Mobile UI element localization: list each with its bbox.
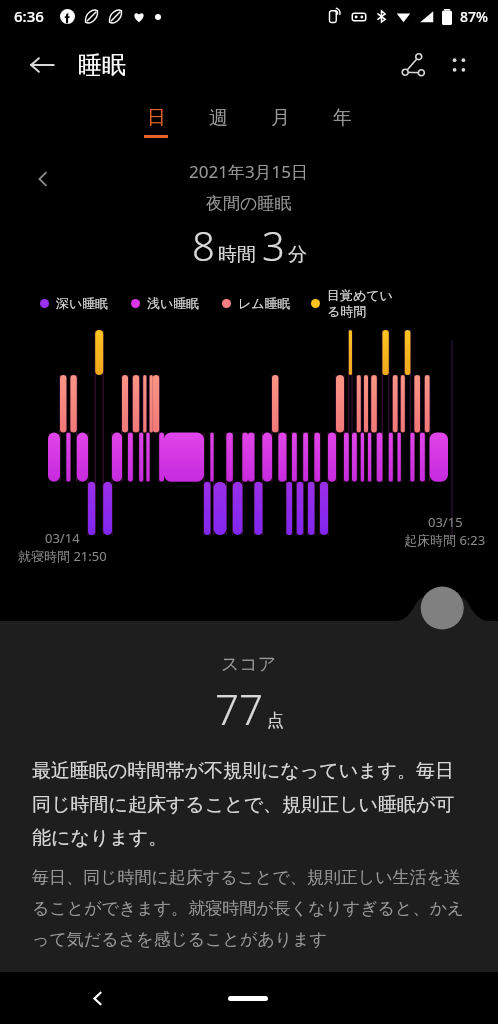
staticText: 時間 <box>218 243 256 267</box>
staticText: 03/14 <box>45 529 80 547</box>
staticText: 毎日、同じ時間に起床することで、規則正しい生活を送ることができます。就寝時間が長… <box>32 867 466 950</box>
button[interactable]: Home <box>228 996 268 1001</box>
button[interactable]: Back <box>22 45 62 85</box>
staticText: 77 <box>215 680 263 737</box>
button[interactable]: Previous day <box>24 160 62 198</box>
staticText: 点 <box>267 710 284 731</box>
staticText: 起床時間 6:23 <box>404 531 486 549</box>
staticText: レム睡眠 <box>238 295 291 311</box>
staticText: 分 <box>288 243 307 267</box>
staticText: 年 <box>333 106 352 130</box>
button[interactable]: Share <box>390 42 436 88</box>
staticText: 睡眠 <box>78 50 126 80</box>
staticText: 87% <box>460 7 488 26</box>
staticText: 夜間の睡眠 <box>206 193 292 214</box>
staticText: スコア <box>221 653 277 676</box>
staticText: 就寝時間 21:50 <box>18 547 107 565</box>
button[interactable]: 日 <box>125 99 187 145</box>
staticText: 8 <box>192 218 215 272</box>
staticText: 目覚めてい <box>327 287 393 303</box>
staticText: 週 <box>209 106 228 130</box>
staticText: 3 <box>262 218 285 272</box>
button[interactable]: 月 <box>249 99 311 145</box>
staticText: 日 <box>147 106 166 130</box>
staticText: 03/15 <box>428 513 463 531</box>
button[interactable]: Back <box>78 979 116 1017</box>
staticText: 2021年3月15日 <box>189 160 309 183</box>
button[interactable]: 週 <box>187 99 249 145</box>
staticText: 月 <box>271 106 290 130</box>
staticText: 深い睡眠 <box>56 295 109 311</box>
staticText: 最近睡眠の時間帯が不規則になっています。毎日同じ時間に起床することで、規則正しい… <box>32 759 466 849</box>
button[interactable]: More options <box>436 42 482 88</box>
staticText: 6:36 <box>14 6 44 26</box>
staticText: る時間 <box>327 303 367 319</box>
staticText: 浅い睡眠 <box>147 295 200 311</box>
button[interactable]: 年 <box>311 99 373 145</box>
